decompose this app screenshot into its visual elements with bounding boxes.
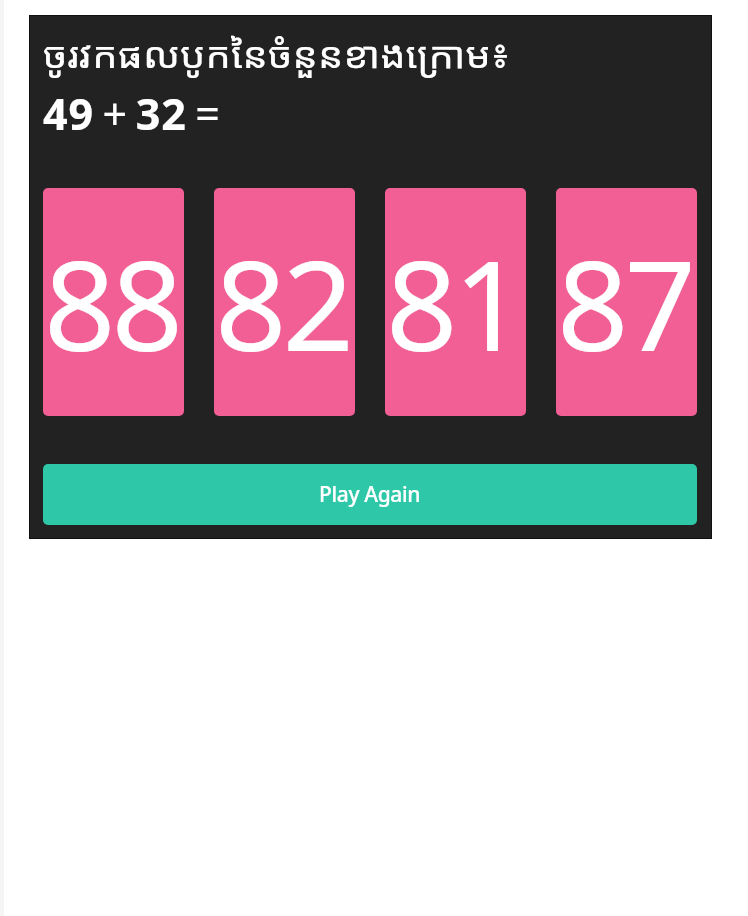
staticText: 88 — [46, 217, 181, 387]
staticText: 49 + 32 = — [43, 84, 220, 143]
button[interactable]: 88 — [43, 188, 184, 416]
button[interactable]: 82 — [214, 188, 355, 416]
staticText: 81 — [388, 217, 523, 387]
button[interactable]: Play Again — [43, 464, 697, 525]
staticText: ចូរវកផលបូកនៃចំនួនខាងក្រោម៖ — [43, 35, 511, 89]
staticText: 82 — [217, 217, 352, 387]
staticText: 87 — [559, 217, 694, 387]
button[interactable]: 87 — [556, 188, 697, 416]
button[interactable]: 81 — [385, 188, 526, 416]
staticText: Play Again — [319, 480, 421, 509]
